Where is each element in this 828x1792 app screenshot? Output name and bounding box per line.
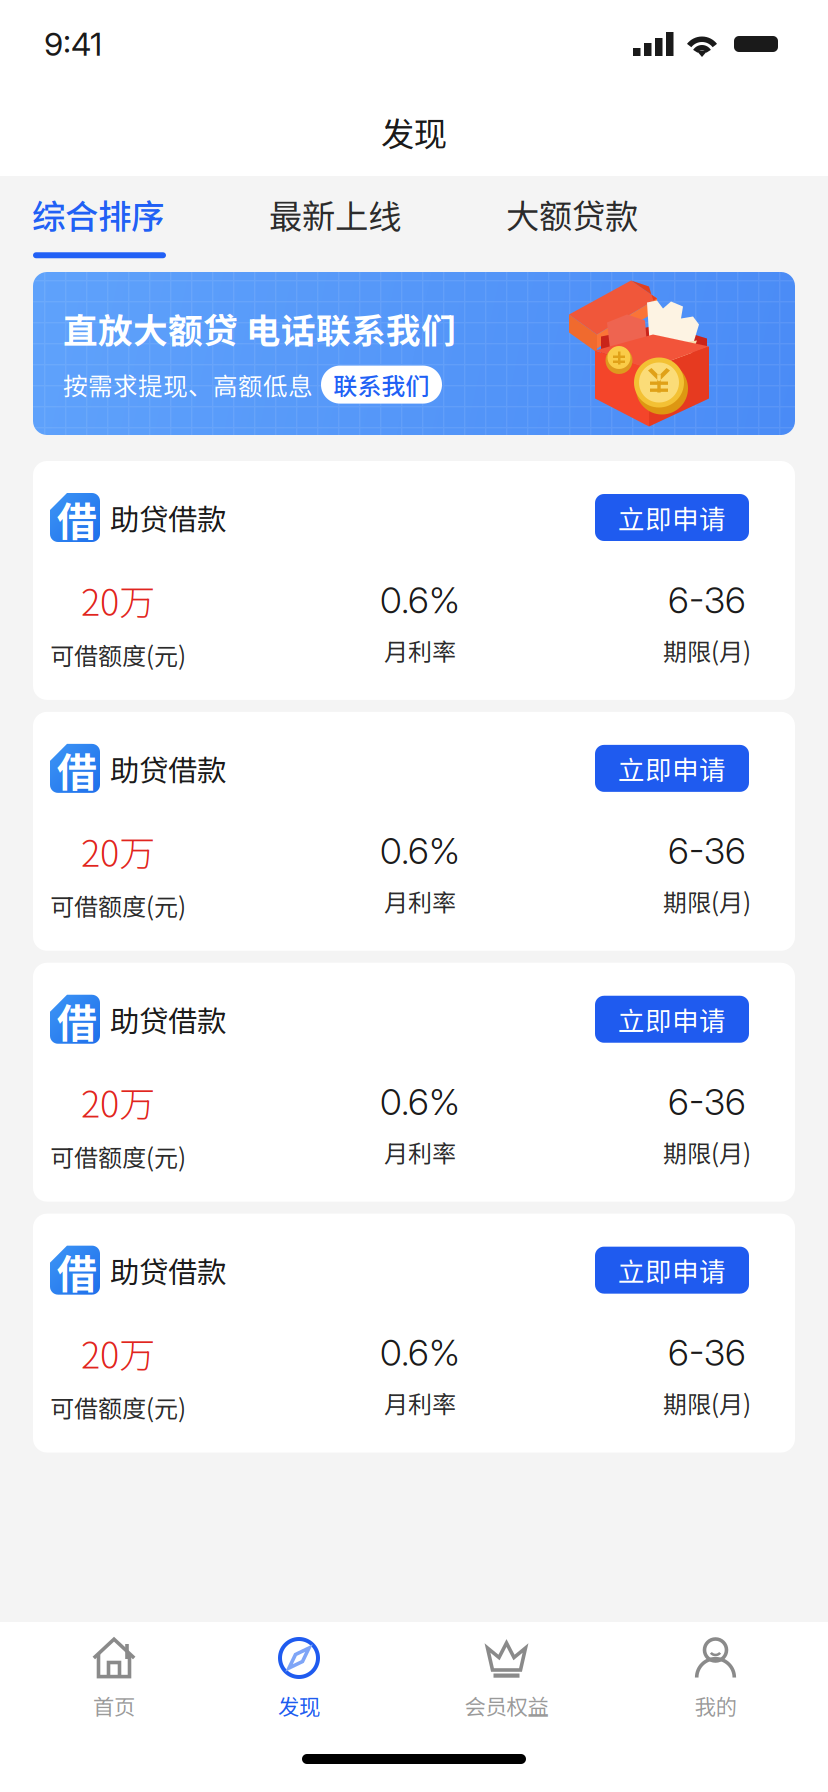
staticText: 立即申请 [618,1000,726,1039]
staticText: 借 [57,1242,97,1300]
staticText: 20万 [81,1327,155,1379]
staticText: 可借额度(元) [50,888,186,923]
staticText: 助贷借款 [110,1249,226,1291]
button[interactable]: 借 [0,1214,828,1452]
button[interactable]: 会员权益 [370,1622,643,1721]
staticText: 立即申请 [618,1251,726,1289]
staticText: 20万 [81,825,155,877]
staticText: 综合排序 [32,190,164,238]
button[interactable]: 大额贷款 [504,176,741,258]
staticText: 6-36 [668,578,746,622]
staticText: 期限(月) [663,884,751,918]
staticText: 首页 [93,1690,135,1721]
staticText: 助贷借款 [110,998,226,1040]
button[interactable]: 借 [0,712,828,951]
staticText: 9:41 [44,25,102,63]
staticText: 我的 [694,1690,736,1721]
staticText: 可借额度(元) [50,637,186,672]
button[interactable]: 我的 [643,1622,788,1721]
staticText: 发现 [381,108,447,156]
staticText: 20万 [81,1076,155,1128]
staticText: 借 [57,740,97,798]
staticText: 立即申请 [618,498,726,537]
staticText: 会员权益 [464,1690,548,1721]
staticText: 20万 [81,574,155,626]
staticText: 0.6% [380,829,460,873]
staticText: 最新上线 [269,190,401,238]
staticText: 6-36 [668,1080,746,1124]
staticText: 按需求提现、高额低息 [63,367,313,402]
staticText: 0.6% [380,1080,460,1124]
staticText: 月利率 [384,884,456,918]
staticText: 0.6% [380,1331,460,1374]
button[interactable]: 首页 [0,1622,228,1721]
staticText: 期限(月) [663,1135,751,1169]
staticText: 月利率 [384,633,456,668]
button[interactable]: 借 [0,461,828,700]
staticText: 可借额度(元) [50,1390,186,1425]
staticText: 直放大额贷 电话联系我们 [63,303,456,354]
button[interactable]: 最新上线 [267,176,504,258]
staticText: 助贷借款 [110,496,226,539]
button[interactable]: 借 [0,963,828,1202]
staticText: 月利率 [384,1135,456,1169]
staticText: 助贷借款 [110,747,226,790]
staticText: 可借额度(元) [50,1139,186,1174]
staticText: 借 [57,991,97,1049]
staticText: 期限(月) [663,633,751,668]
staticText: 期限(月) [663,1385,751,1420]
staticText: 6-36 [668,829,746,873]
button[interactable]: 发现 [228,1622,370,1721]
button[interactable]: 综合排序 [30,176,267,258]
staticText: 0.6% [380,578,460,622]
staticText: 立即申请 [618,749,726,788]
staticText: 联系我们 [333,367,429,402]
staticText: 6-36 [668,1331,746,1374]
staticText: 发现 [278,1690,320,1721]
staticText: 大额贷款 [506,190,638,238]
button[interactable]: 直放大额贷 电话联系我们 [0,272,828,435]
staticText: 月利率 [384,1385,456,1420]
staticText: 借 [57,489,97,547]
